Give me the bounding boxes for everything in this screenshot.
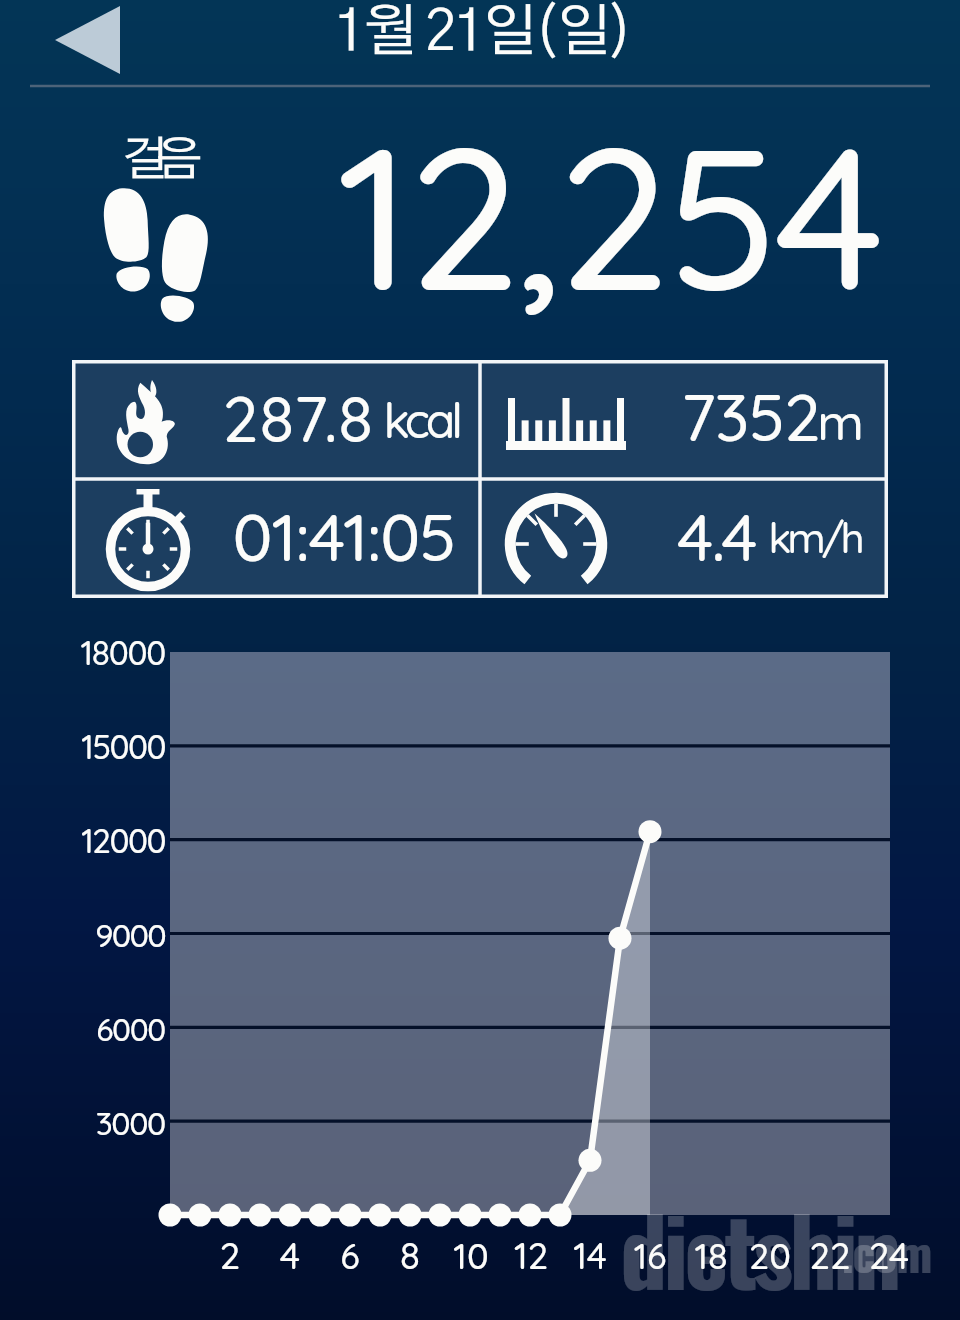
staticText: 7352 — [0, 376, 820, 500]
staticText: 15000 — [0, 726, 165, 789]
staticText: km/h — [0, 511, 861, 590]
staticText: 4 — [0, 1232, 770, 1303]
staticText: 18000 — [0, 632, 165, 695]
staticText: 18 — [231, 1233, 960, 1302]
staticText: 24 — [409, 1232, 960, 1302]
staticText: 4.4 — [0, 495, 756, 620]
staticText: dietshin — [620, 1178, 960, 1320]
staticText: 9000 — [0, 915, 165, 977]
staticText: 20 — [290, 1233, 960, 1302]
staticText: 2 — [0, 1232, 710, 1302]
staticText: 걸음 — [122, 137, 960, 233]
staticText: 1월 21일(일) — [2, 5, 960, 113]
staticText: 8 — [0, 1232, 890, 1302]
staticText: m — [0, 389, 864, 486]
staticText: 12 — [51, 1232, 960, 1302]
staticText: 287.8 — [0, 378, 374, 499]
staticText: 01:41:05 — [0, 494, 455, 621]
staticText: 12,254 — [0, 90, 881, 470]
staticText: 12000 — [0, 820, 165, 883]
button[interactable]: Back — [40, 2, 130, 80]
staticText: .com — [842, 1216, 960, 1312]
staticText: 14 — [110, 1232, 960, 1302]
staticText: 16 — [170, 1233, 960, 1301]
staticText: 3000 — [0, 1103, 165, 1164]
staticText: kcal — [0, 390, 459, 481]
staticText: 22 — [350, 1232, 960, 1302]
staticText: 10 — [0, 1233, 951, 1302]
staticText: 6000 — [0, 1009, 165, 1069]
staticText: 6 — [0, 1233, 830, 1301]
